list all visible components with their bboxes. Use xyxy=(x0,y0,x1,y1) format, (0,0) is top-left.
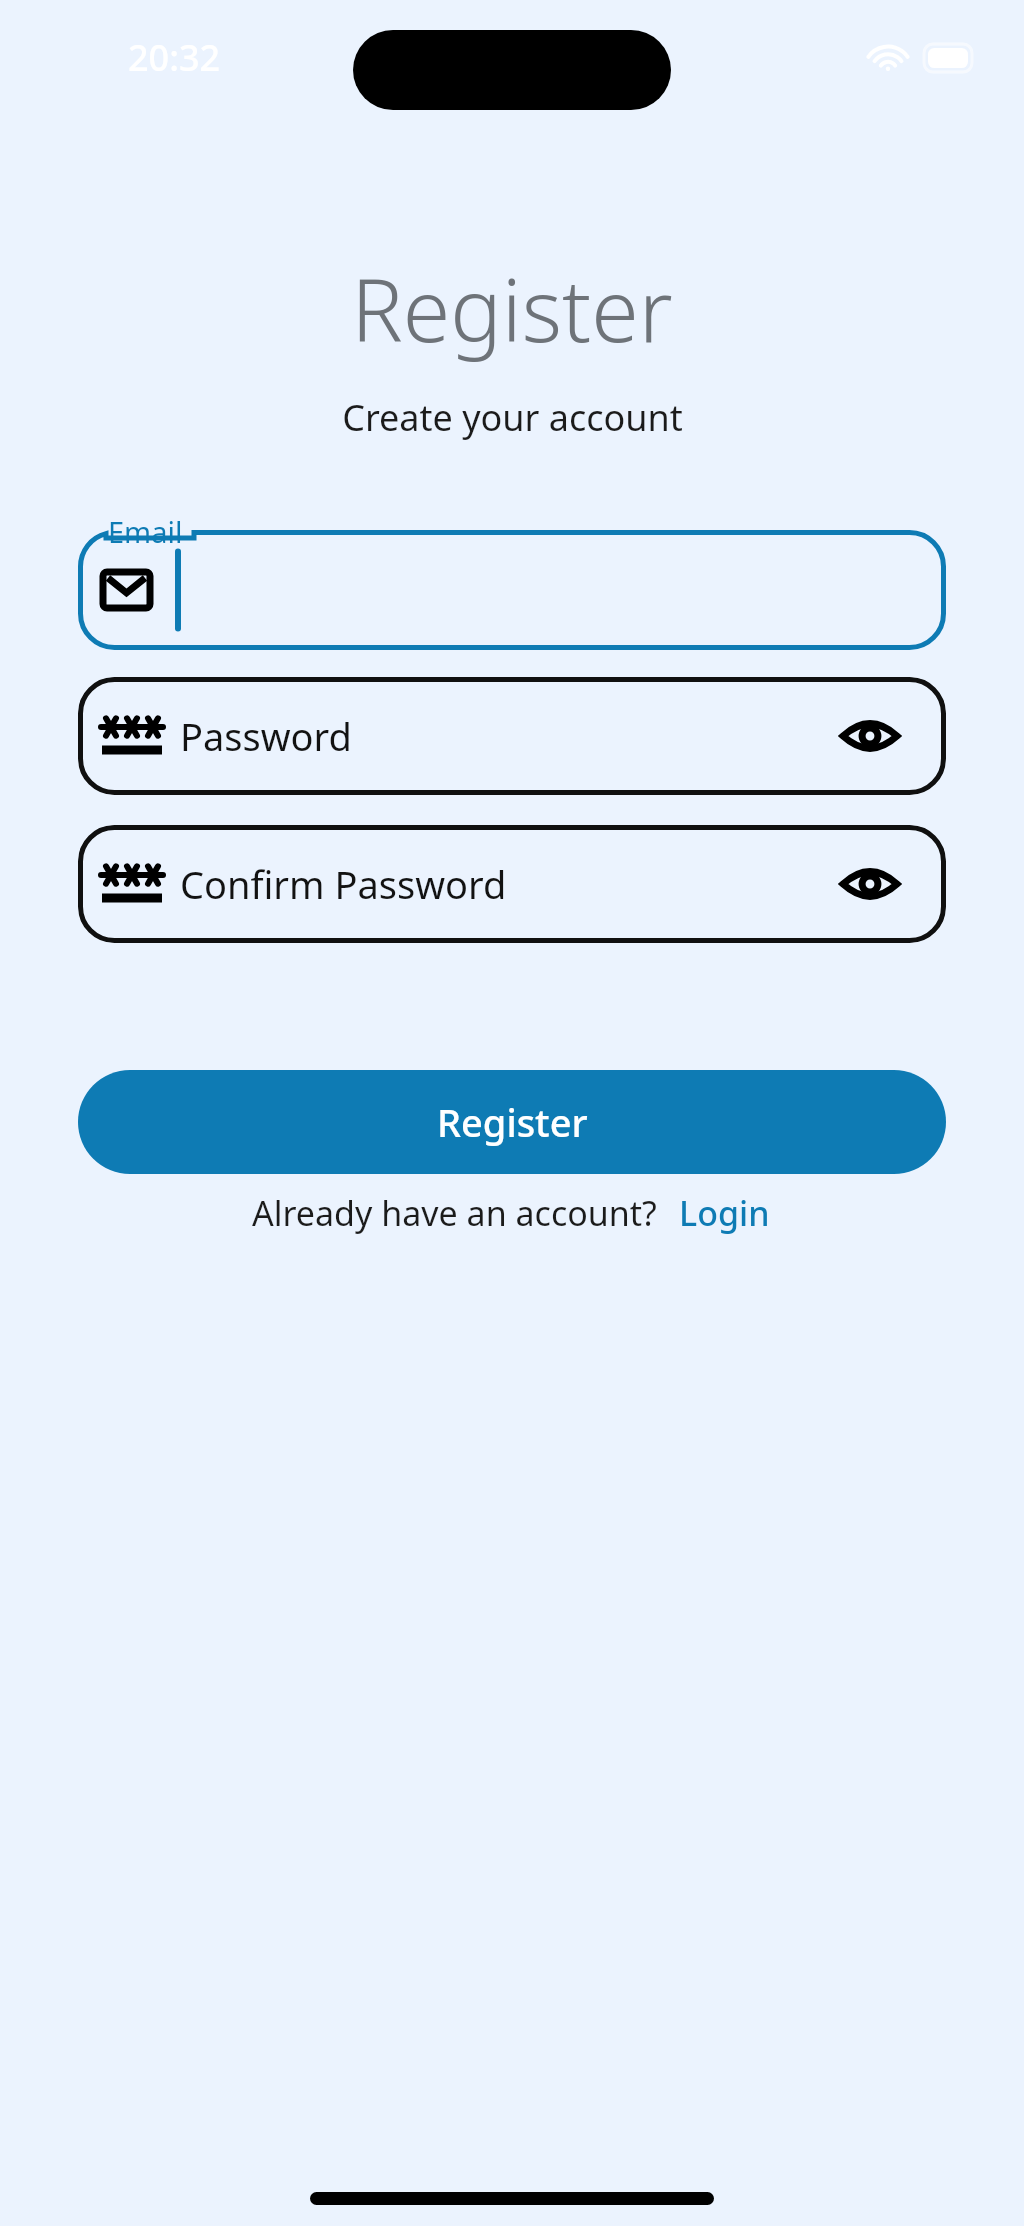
button[interactable]: Login xyxy=(677,1188,772,1238)
staticText: Login xyxy=(679,1190,770,1236)
staticText: Password xyxy=(180,710,352,762)
button[interactable]: Show password xyxy=(832,846,908,922)
staticText: Register xyxy=(351,250,673,367)
staticText: Register xyxy=(437,1096,588,1148)
staticText: Already have an account? xyxy=(252,1190,657,1236)
button[interactable]: Show password xyxy=(832,698,908,774)
staticText: Create your account xyxy=(342,393,683,442)
staticText: Confirm Password xyxy=(180,858,507,910)
button[interactable]: Register xyxy=(78,1070,946,1174)
button[interactable]: Email xyxy=(78,512,946,650)
button[interactable]: Password xyxy=(78,677,946,795)
staticText: Email xyxy=(108,512,183,551)
button[interactable]: Confirm Password xyxy=(78,825,946,943)
staticText: 20:32 xyxy=(128,33,221,82)
